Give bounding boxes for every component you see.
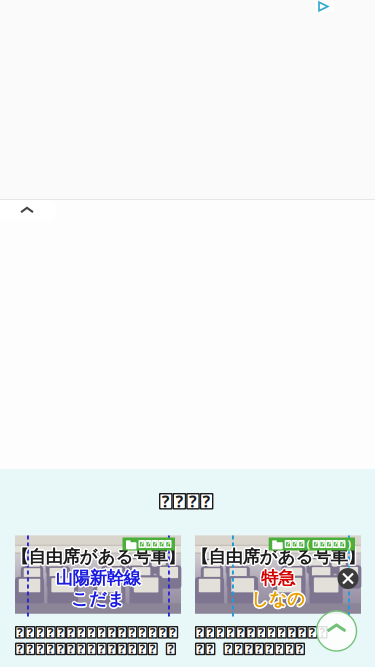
staticText: ? — [160, 539, 164, 549]
staticText: 特急 — [262, 568, 296, 590]
staticText: 【自由席がある号車】 — [191, 548, 364, 569]
staticText: こだま — [71, 590, 125, 611]
staticText: しなの — [250, 587, 304, 609]
staticText: ? — [88, 624, 94, 640]
staticText: こだま — [70, 590, 124, 611]
staticText: しなの — [251, 587, 305, 608]
staticText: ? — [150, 641, 156, 657]
staticText: 特急 — [261, 567, 295, 589]
staticText: こだま — [72, 588, 126, 610]
staticText: 特急 — [261, 569, 295, 590]
staticText: 【自由席がある号車】 — [190, 545, 363, 566]
staticText: ? — [175, 491, 183, 512]
staticText: ? — [238, 624, 244, 640]
staticText: ? — [246, 641, 252, 657]
staticText: ? — [129, 624, 135, 640]
staticText: 山陽新幹線 — [55, 569, 140, 590]
staticText: ? — [129, 641, 135, 657]
staticText: ? — [17, 624, 23, 640]
staticText: 【自由席がある号車】 — [193, 545, 366, 566]
staticText: 山陽新幹線 — [57, 568, 142, 590]
staticText: ? — [119, 641, 125, 657]
staticText: ? — [320, 539, 324, 549]
button[interactable]: Collapse advertisement — [0, 200, 56, 221]
staticText: ? — [217, 624, 223, 640]
staticText: ? — [162, 491, 170, 512]
staticText: 【自由席がある号車】 — [191, 546, 364, 567]
staticText: 山陽新幹線 — [54, 566, 139, 587]
staticText: ? — [150, 624, 156, 640]
staticText: ? — [236, 641, 242, 657]
staticText: ? — [119, 624, 125, 640]
staticText: しなの — [252, 590, 306, 611]
staticText: ? — [109, 624, 115, 640]
staticText: ? — [289, 624, 295, 640]
staticText: しなの — [249, 588, 303, 610]
staticText: ? — [279, 624, 285, 640]
staticText: こだま — [69, 588, 123, 610]
staticText: ? — [287, 641, 293, 657]
staticText: ? — [166, 539, 170, 549]
staticText: 【自由席がある号車】 — [190, 547, 363, 569]
staticText: ? — [17, 641, 23, 657]
staticText: こだま — [71, 587, 125, 608]
staticText: 【自由席がある号車】 — [190, 546, 363, 567]
staticText: 特急 — [260, 566, 294, 587]
staticText: 特急 — [261, 566, 295, 587]
staticText: ? — [340, 539, 344, 549]
staticText: 山陽新幹線 — [54, 568, 139, 590]
staticText: 特急 — [262, 566, 296, 587]
staticText: ? — [197, 624, 203, 640]
staticText: 【自由席がある号車】 — [10, 547, 183, 569]
staticText: しなの — [252, 588, 306, 610]
staticText: しなの — [251, 590, 305, 611]
staticText: 【自由席がある号車】 — [11, 548, 184, 569]
staticText: ? — [266, 641, 272, 657]
staticText: ? — [207, 624, 213, 640]
staticText: ? — [299, 624, 305, 640]
staticText: 特急 — [260, 568, 294, 590]
staticText: しなの — [250, 590, 304, 611]
staticText: ? — [299, 539, 303, 549]
staticText: ? — [99, 641, 105, 657]
staticText: ? — [146, 539, 150, 549]
staticText: 山陽新幹線 — [55, 566, 140, 587]
staticText: 【自由席がある号車】 — [11, 545, 184, 566]
staticText: こだま — [72, 587, 126, 609]
staticText: 山陽新幹線 — [55, 567, 140, 589]
staticText: こだま — [71, 588, 125, 610]
staticText: しなの — [251, 588, 305, 610]
staticText: 【自由席がある号車】 — [193, 546, 366, 567]
staticText: ? — [276, 641, 282, 657]
staticText: ? — [314, 539, 318, 549]
staticText: ? — [286, 539, 290, 549]
staticText: ? — [248, 624, 254, 640]
staticText: ? — [256, 641, 262, 657]
staticText: ? — [58, 641, 64, 657]
staticText: ? — [170, 624, 176, 640]
staticText: ? — [68, 624, 74, 640]
staticText: ? — [327, 539, 331, 549]
staticText: ( — [306, 537, 310, 551]
staticText: ? — [319, 624, 325, 640]
staticText: 山陽新幹線 — [54, 567, 139, 589]
staticText: ? — [99, 624, 105, 640]
button[interactable]: 【自由席がある号車】 — [15, 542, 181, 655]
staticText: 【自由席がある号車】 — [10, 545, 183, 566]
button[interactable]: Scroll to top — [312, 611, 361, 651]
staticText: 【自由席がある号車】 — [13, 545, 186, 566]
staticText: ? — [88, 641, 94, 657]
staticText: ? — [58, 624, 64, 640]
staticText: ? — [27, 624, 33, 640]
staticText: ? — [207, 641, 213, 657]
staticText: ? — [297, 641, 303, 657]
staticText: ? — [258, 624, 264, 640]
staticText: ? — [140, 539, 144, 549]
staticText: ? — [48, 624, 54, 640]
staticText: こだま — [72, 590, 126, 611]
button[interactable]: 【自由席がある号車】 — [195, 542, 361, 655]
staticText: 【自由席がある号車】 — [10, 546, 183, 567]
staticText: ? — [139, 641, 145, 657]
staticText: ) — [347, 537, 351, 551]
staticText: ? — [27, 641, 33, 657]
